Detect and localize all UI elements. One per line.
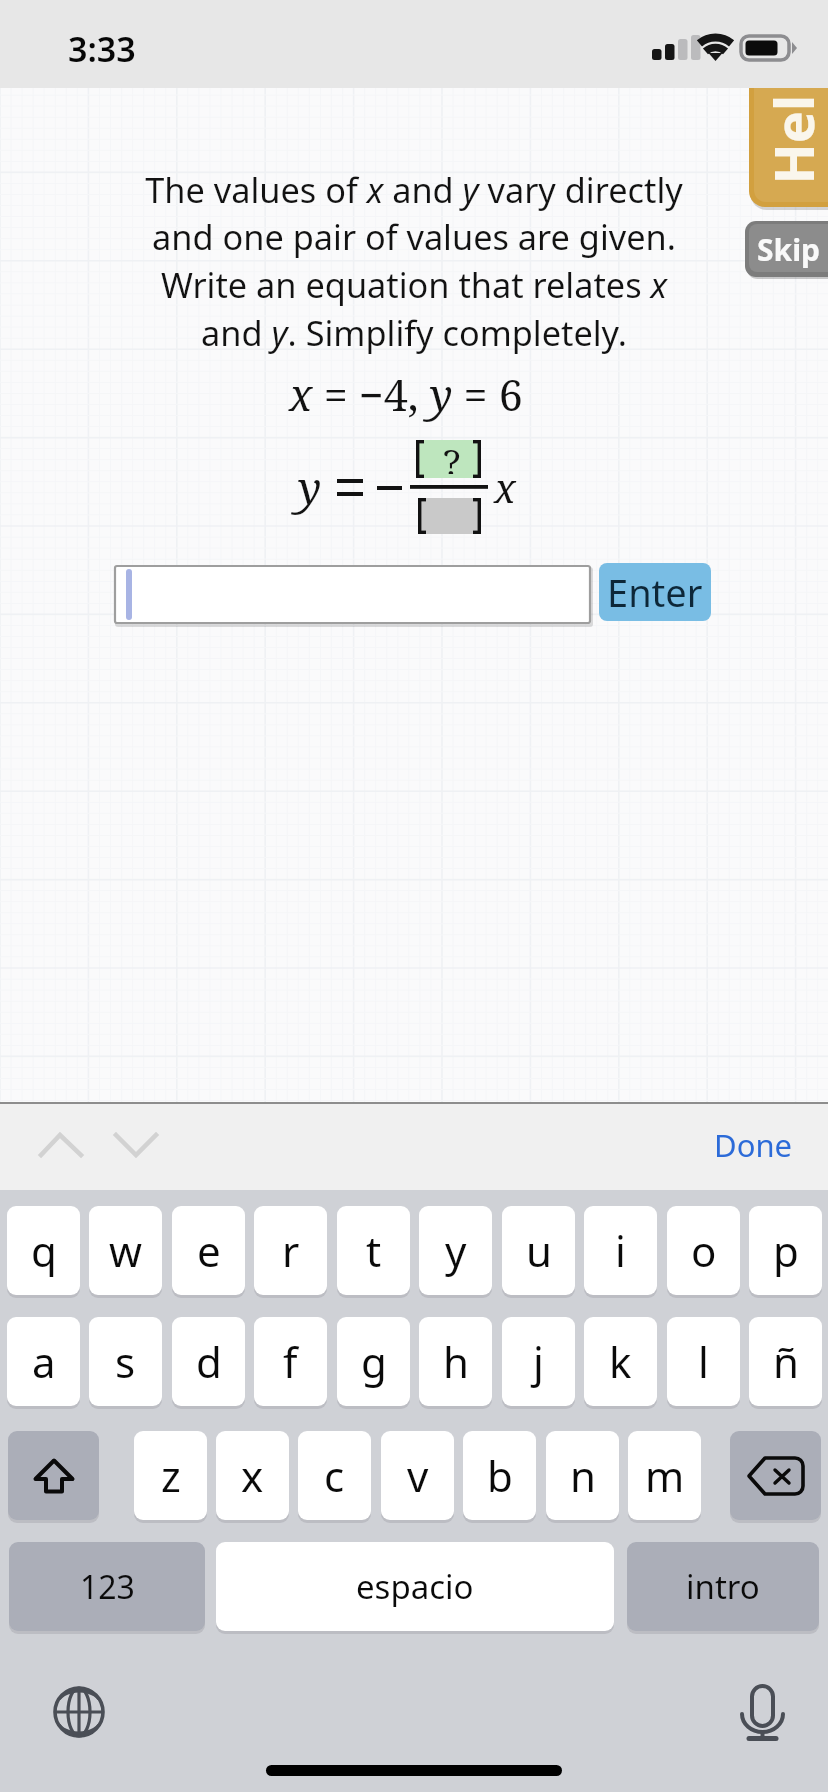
button[interactable]: x [216,1430,289,1523]
staticText: c [324,1447,345,1504]
button[interactable]: c [298,1430,371,1523]
staticText: s [115,1333,136,1390]
button[interactable]: y [419,1205,492,1298]
staticText: y [445,1222,467,1279]
button[interactable]: o [667,1205,740,1298]
staticText: o [691,1222,717,1279]
button[interactable]: j [502,1316,575,1409]
staticText: x [494,460,516,514]
staticText: 3:33 [68,26,136,72]
staticText: w [109,1222,143,1279]
staticText: t [366,1222,382,1279]
staticText: ñ [773,1333,799,1390]
button[interactable]: w [89,1205,162,1298]
staticText: f [283,1333,298,1390]
button[interactable]: p [749,1205,822,1298]
staticText: k [609,1333,632,1390]
button[interactable]: Next field [100,1106,172,1186]
button[interactable]: q [7,1205,80,1298]
button[interactable]: Change keyboard [51,1684,107,1740]
staticText: intro [686,1564,760,1609]
button[interactable]: v [381,1430,454,1523]
button[interactable]: b [463,1430,536,1523]
staticText: Enter [607,566,703,618]
button[interactable]: n [546,1430,619,1523]
staticText: g [361,1333,387,1390]
button[interactable]: Help [749,68,828,211]
button[interactable]: Enter [599,563,711,621]
button[interactable]: h [419,1316,492,1409]
button[interactable]: Skip [745,220,828,280]
button[interactable]: Previous field [25,1106,97,1186]
staticText: b [487,1447,513,1504]
staticText: n [570,1447,596,1504]
button[interactable]: m [628,1430,701,1523]
staticText: m [645,1447,685,1504]
button[interactable]: k [584,1316,657,1409]
staticText: ? [443,436,461,474]
button[interactable]: Dictate [734,1684,790,1742]
staticText: h [443,1333,469,1390]
staticText: The values of x and y vary directly and … [64,166,764,356]
staticText: 123 [80,1565,135,1609]
button[interactable]: i [584,1205,657,1298]
staticText: a [32,1333,56,1390]
staticText: r [282,1222,300,1279]
button[interactable]: Backspace [730,1430,821,1523]
staticText: u [526,1222,552,1279]
staticText: z [161,1447,181,1504]
button[interactable]: l [667,1316,740,1409]
button[interactable]: 123 [9,1541,205,1634]
staticText: x = −4, y = 6 [289,365,523,424]
button[interactable]: d [172,1316,245,1409]
staticText: v [407,1447,429,1504]
button[interactable]: espacio [216,1541,614,1634]
button[interactable]: intro [627,1541,819,1634]
staticText: q [31,1222,57,1279]
staticText: y [298,457,322,517]
staticText: Skip [757,229,821,270]
staticText: l [698,1333,709,1390]
button[interactable]: r [254,1205,327,1298]
button[interactable]: Shift [8,1430,99,1523]
staticText: d [196,1333,222,1390]
button[interactable]: z [134,1430,207,1523]
staticText: espacio [356,1564,474,1609]
button[interactable]: ñ [749,1316,822,1409]
button[interactable]: Done [704,1116,802,1174]
button[interactable]: t [337,1205,410,1298]
button[interactable]: s [89,1316,162,1409]
button[interactable]: u [502,1205,575,1298]
staticText: x [241,1447,264,1504]
staticText: e [197,1222,221,1279]
button[interactable]: f [254,1316,327,1409]
button[interactable]: a [7,1316,80,1409]
staticText: Done [714,1124,793,1166]
staticText: Help [755,89,828,184]
button[interactable]: e [172,1205,245,1298]
staticText: i [615,1222,626,1279]
button[interactable] [114,565,593,626]
staticText: p [773,1222,799,1279]
staticText: j [533,1333,544,1390]
button[interactable]: g [337,1316,410,1409]
